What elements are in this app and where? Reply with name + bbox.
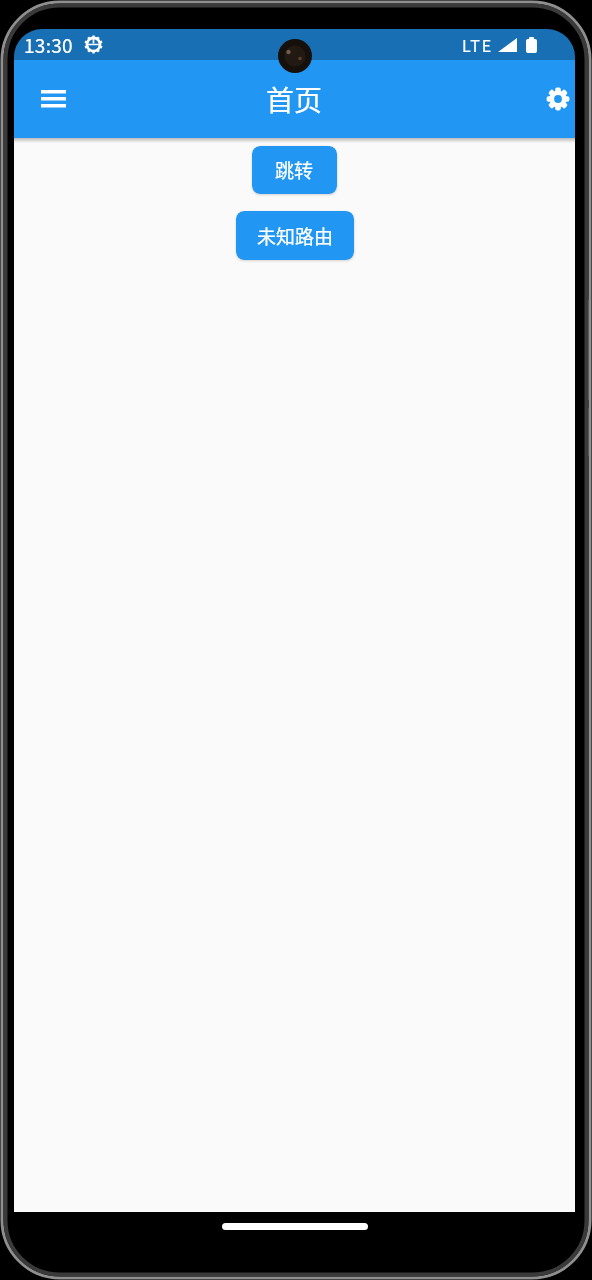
- button[interactable]: 未知路由: [236, 211, 354, 260]
- button[interactable]: [31, 77, 75, 121]
- staticText: 未知路由: [257, 222, 334, 250]
- button[interactable]: 跳转: [252, 146, 337, 194]
- staticText: 首页: [266, 79, 323, 120]
- staticText: 13:30: [24, 31, 73, 59]
- staticText: 跳转: [275, 156, 314, 184]
- button[interactable]: [541, 82, 575, 116]
- staticText: LTE: [462, 33, 493, 56]
